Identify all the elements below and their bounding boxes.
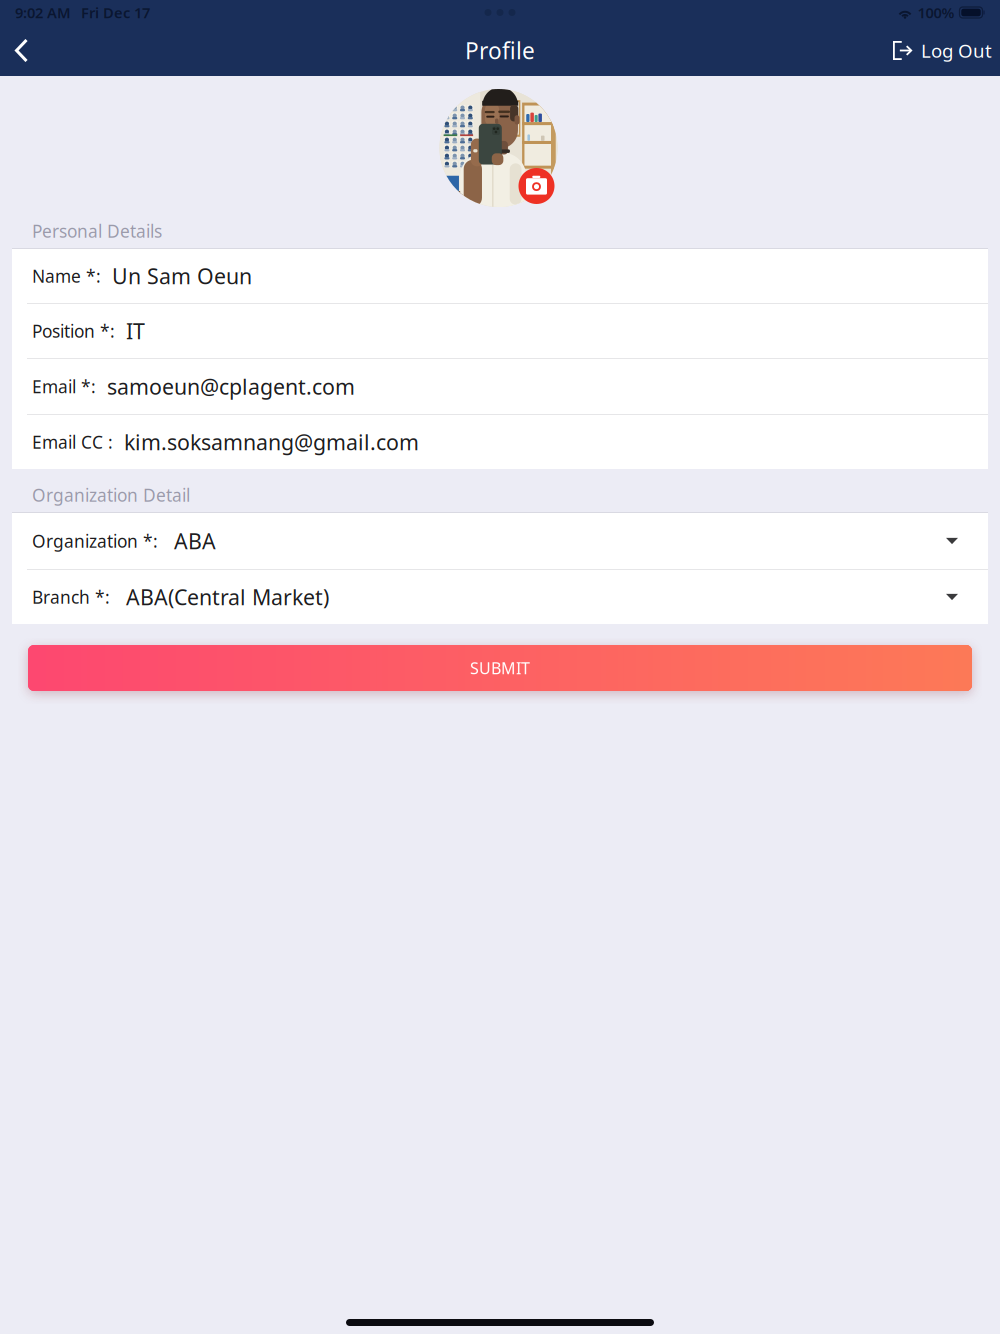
button[interactable]: Branch *: (12, 570, 988, 624)
staticText: Name *: (32, 264, 101, 287)
staticText: kim.soksamnang@gmail.com (124, 428, 419, 456)
staticText: 9:02 AM (15, 3, 71, 22)
staticText: samoeun@cplagent.com (107, 372, 355, 401)
button[interactable]: Organization *: (12, 513, 988, 569)
staticText: Email *: (32, 375, 96, 398)
staticText: Email CC : (32, 430, 113, 453)
staticText: Position *: (32, 319, 115, 342)
staticText: ABA (174, 527, 216, 555)
staticText: Fri Dec 17 (81, 3, 150, 22)
button[interactable]: Change photo (518, 168, 554, 204)
button[interactable]: Position *: (12, 304, 988, 358)
button[interactable]: Email CC : (12, 415, 988, 469)
staticText: Un Sam Oeun (112, 262, 252, 290)
staticText: ABA(Central Market) (126, 583, 329, 611)
button[interactable]: Back (0, 26, 42, 74)
staticText: Profile (465, 35, 535, 65)
staticText: IT (126, 317, 145, 345)
button[interactable]: Log Out (883, 28, 1000, 73)
button[interactable]: Name *: (12, 249, 988, 303)
button[interactable]: Email *: (12, 359, 988, 414)
staticText: Personal Details (32, 219, 162, 242)
staticText: Organization Detail (32, 483, 190, 506)
staticText: Log Out (921, 38, 992, 63)
staticText: Organization *: (32, 529, 158, 552)
staticText: Branch *: (32, 585, 110, 608)
button[interactable]: SUBMIT (28, 645, 972, 691)
staticText: SUBMIT (470, 657, 530, 679)
staticText: 100% (917, 3, 954, 22)
